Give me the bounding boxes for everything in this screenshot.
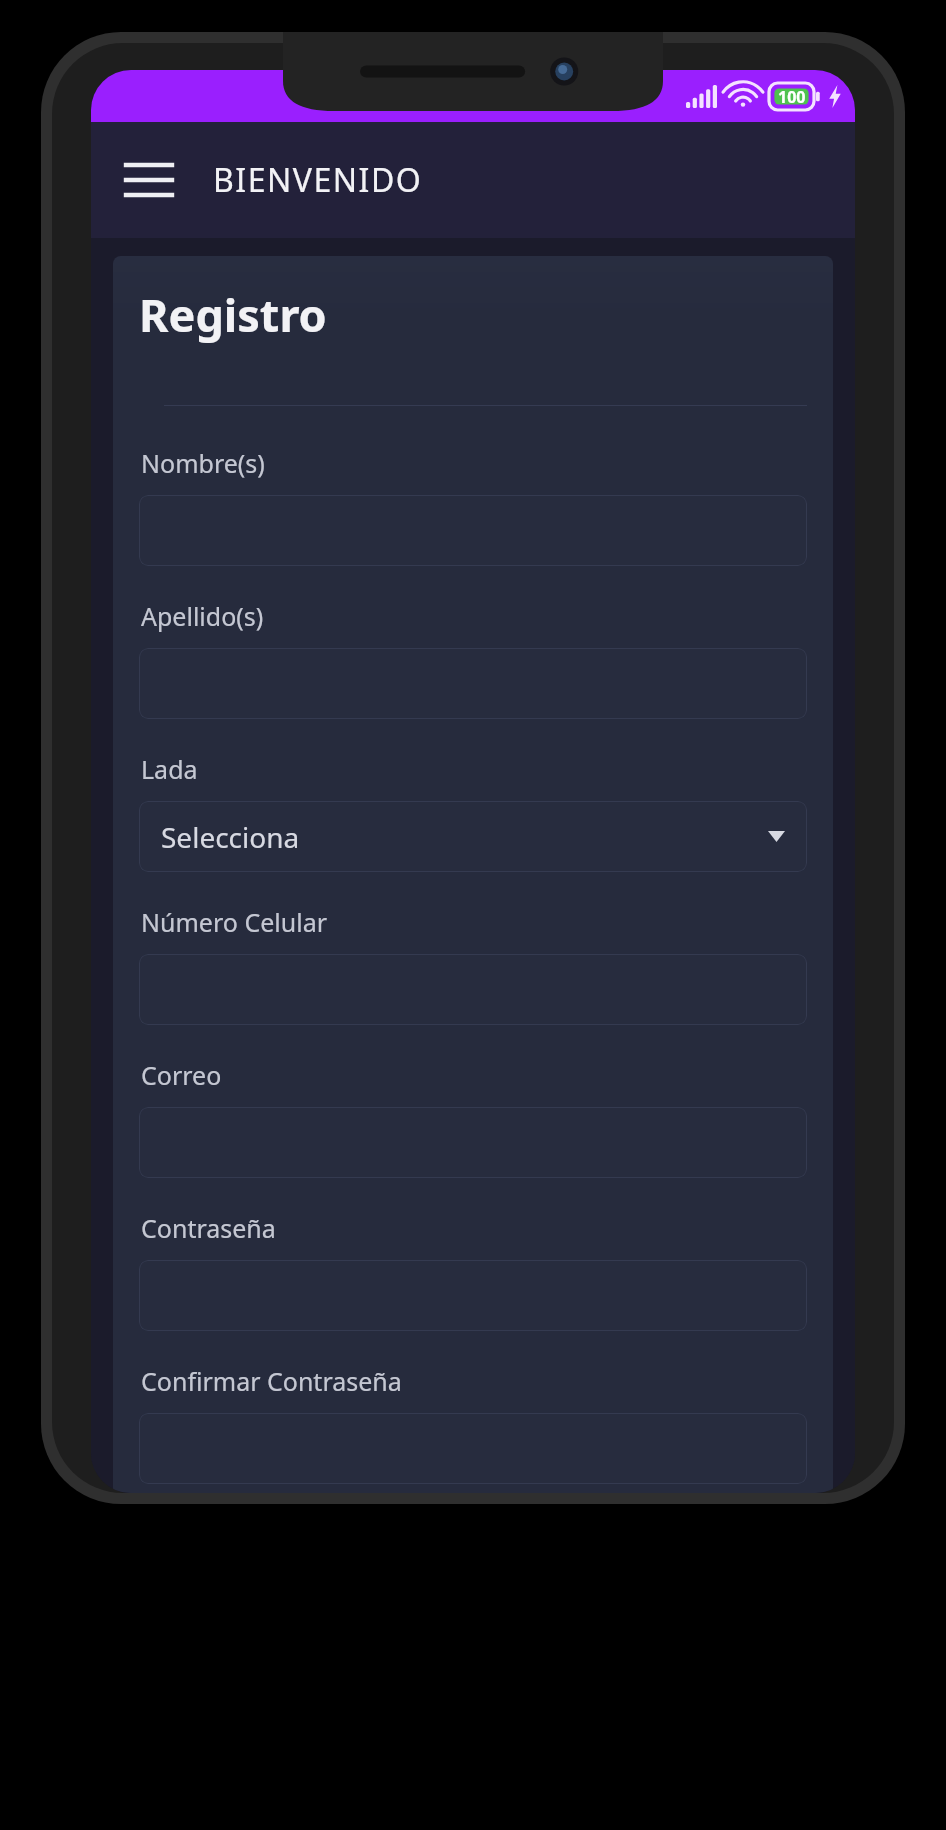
staticText: Lada bbox=[141, 752, 198, 786]
staticText: Correo bbox=[141, 1058, 222, 1092]
button[interactable]: Selecciona bbox=[139, 801, 807, 872]
staticText: Contraseña bbox=[141, 1211, 276, 1245]
staticText: Registro bbox=[139, 284, 327, 345]
button[interactable] bbox=[139, 648, 807, 719]
button[interactable]: Abrir menú bbox=[113, 144, 185, 216]
button[interactable] bbox=[139, 1260, 807, 1331]
staticText: Selecciona bbox=[161, 818, 768, 856]
staticText: Número Celular bbox=[141, 905, 327, 939]
button[interactable] bbox=[139, 1107, 807, 1178]
button[interactable] bbox=[139, 495, 807, 566]
button[interactable] bbox=[139, 954, 807, 1025]
staticText: Apellido(s) bbox=[141, 599, 264, 633]
staticText: Confirmar Contraseña bbox=[141, 1364, 402, 1398]
staticText: 100 bbox=[778, 86, 806, 108]
staticText: BIENVENIDO bbox=[213, 158, 423, 202]
staticText: Nombre(s) bbox=[141, 446, 265, 480]
button[interactable] bbox=[139, 1413, 807, 1484]
